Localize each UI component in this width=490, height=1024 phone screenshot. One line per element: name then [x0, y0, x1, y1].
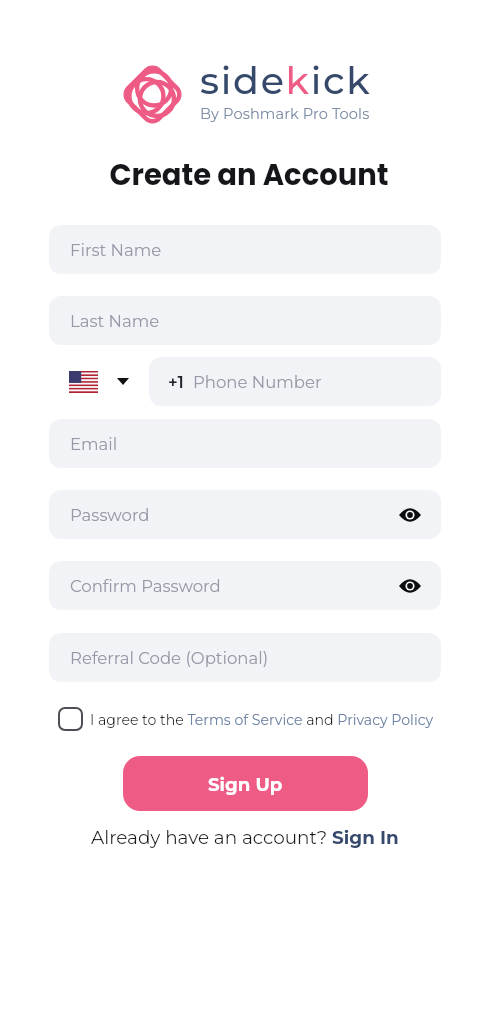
button[interactable]: I agree to the terms [58, 707, 83, 731]
button[interactable]: Sign In [332, 826, 399, 848]
staticText: I agree to the Terms of Service and Priv… [90, 711, 434, 728]
button[interactable]: Confirm Password [49, 561, 441, 610]
button[interactable]: +1 [149, 357, 441, 406]
button[interactable]: Select country code [49, 357, 149, 406]
staticText: By Poshmark Pro Tools [200, 105, 370, 123]
staticText: Create an Account [4, 155, 490, 196]
other: Show password [399, 580, 421, 592]
staticText: Email [70, 434, 118, 454]
staticText: Already have an account? [91, 826, 332, 848]
button[interactable]: Password [49, 490, 441, 539]
staticText: Confirm Password [70, 576, 221, 596]
other: Show password [399, 509, 421, 521]
staticText: First Name [70, 240, 162, 260]
staticText: Sign Up [208, 773, 283, 795]
button[interactable]: Referral Code (Optional) [49, 633, 441, 682]
staticText: Referral Code (Optional) [70, 648, 269, 668]
button[interactable]: First Name [49, 225, 441, 274]
button[interactable]: Email [49, 419, 441, 468]
button[interactable]: Last Name [49, 296, 441, 345]
staticText: Last Name [70, 311, 160, 331]
staticText: +1 [168, 372, 184, 392]
staticText: Password [70, 505, 150, 525]
staticText: sidekick [200, 57, 372, 103]
staticText: Phone Number [193, 372, 322, 392]
button[interactable]: Sign Up [123, 756, 368, 811]
